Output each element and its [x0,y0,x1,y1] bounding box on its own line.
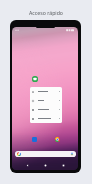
button[interactable]: Chrome [55,137,60,142]
button[interactable] [30,105,62,114]
button[interactable]: Search [15,151,76,157]
button[interactable] [30,96,62,105]
staticText: Acceso rápido [0,9,92,16]
button[interactable] [30,114,62,123]
button[interactable]: App icon [32,76,38,82]
button[interactable]: App [32,137,37,142]
button[interactable]: Home [44,164,47,167]
button[interactable]: Back [26,164,29,167]
button[interactable]: Recents [62,164,65,167]
button[interactable] [30,87,62,96]
